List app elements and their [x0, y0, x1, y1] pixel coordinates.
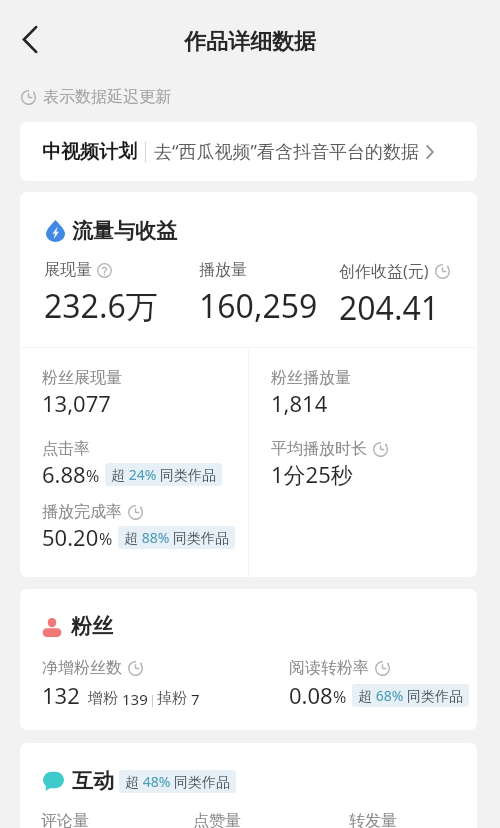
staticText: 139 [122, 689, 148, 709]
staticText: 增粉 [88, 689, 118, 708]
staticText: 超 68% 同类作品 [358, 686, 463, 705]
staticText: 创作收益(元) [339, 260, 429, 282]
staticText: 1,814 [271, 388, 328, 418]
staticText: 超 88% 同类作品 [124, 528, 229, 547]
staticText: 50.20 [42, 522, 99, 552]
staticText: % [99, 528, 113, 550]
staticText: 表示数据延迟更新 [43, 87, 171, 107]
staticText: 232.6万 [44, 284, 158, 328]
staticText: 204.41 [339, 286, 440, 330]
staticText: 播放量 [199, 260, 247, 280]
staticText: 评论量 [41, 811, 89, 828]
staticText: 阅读转粉率 [289, 658, 369, 678]
staticText: 132 [42, 680, 80, 710]
button[interactable]: 中视频计划 [20, 122, 477, 181]
staticText: 超 24% 同类作品 [111, 465, 216, 484]
staticText: 转发量 [349, 811, 397, 828]
staticText: 掉粉 [157, 689, 187, 708]
button[interactable]: Back [8, 17, 52, 61]
staticText: 7 [191, 689, 200, 709]
staticText: 净增粉丝数 [42, 658, 122, 678]
staticText: % [333, 686, 347, 708]
staticText: 1分25秒 [271, 459, 353, 489]
staticText: % [86, 465, 100, 487]
staticText: 160,259 [199, 284, 318, 328]
staticText: 作品详细数据 [184, 28, 316, 56]
staticText: 去“西瓜视频”看含抖音平台的数据 [154, 139, 419, 164]
staticText: 超 48% 同类作品 [125, 772, 230, 791]
staticText: 点击率 [42, 439, 90, 459]
staticText: 粉丝 [71, 613, 113, 639]
staticText: 点赞量 [193, 811, 241, 828]
staticText: 播放完成率 [42, 502, 122, 522]
staticText: 流量与收益 [72, 218, 177, 244]
staticText: 展现量 [44, 260, 92, 280]
staticText: 平均播放时长 [271, 439, 367, 459]
staticText: 中视频计划 [42, 140, 137, 164]
staticText: 0.08 [289, 680, 333, 710]
staticText: 13,077 [42, 388, 111, 418]
staticText: 互动 [72, 768, 114, 794]
staticText: 6.88 [42, 459, 86, 489]
staticText: 粉丝播放量 [271, 368, 351, 388]
staticText: 粉丝展现量 [42, 368, 122, 388]
